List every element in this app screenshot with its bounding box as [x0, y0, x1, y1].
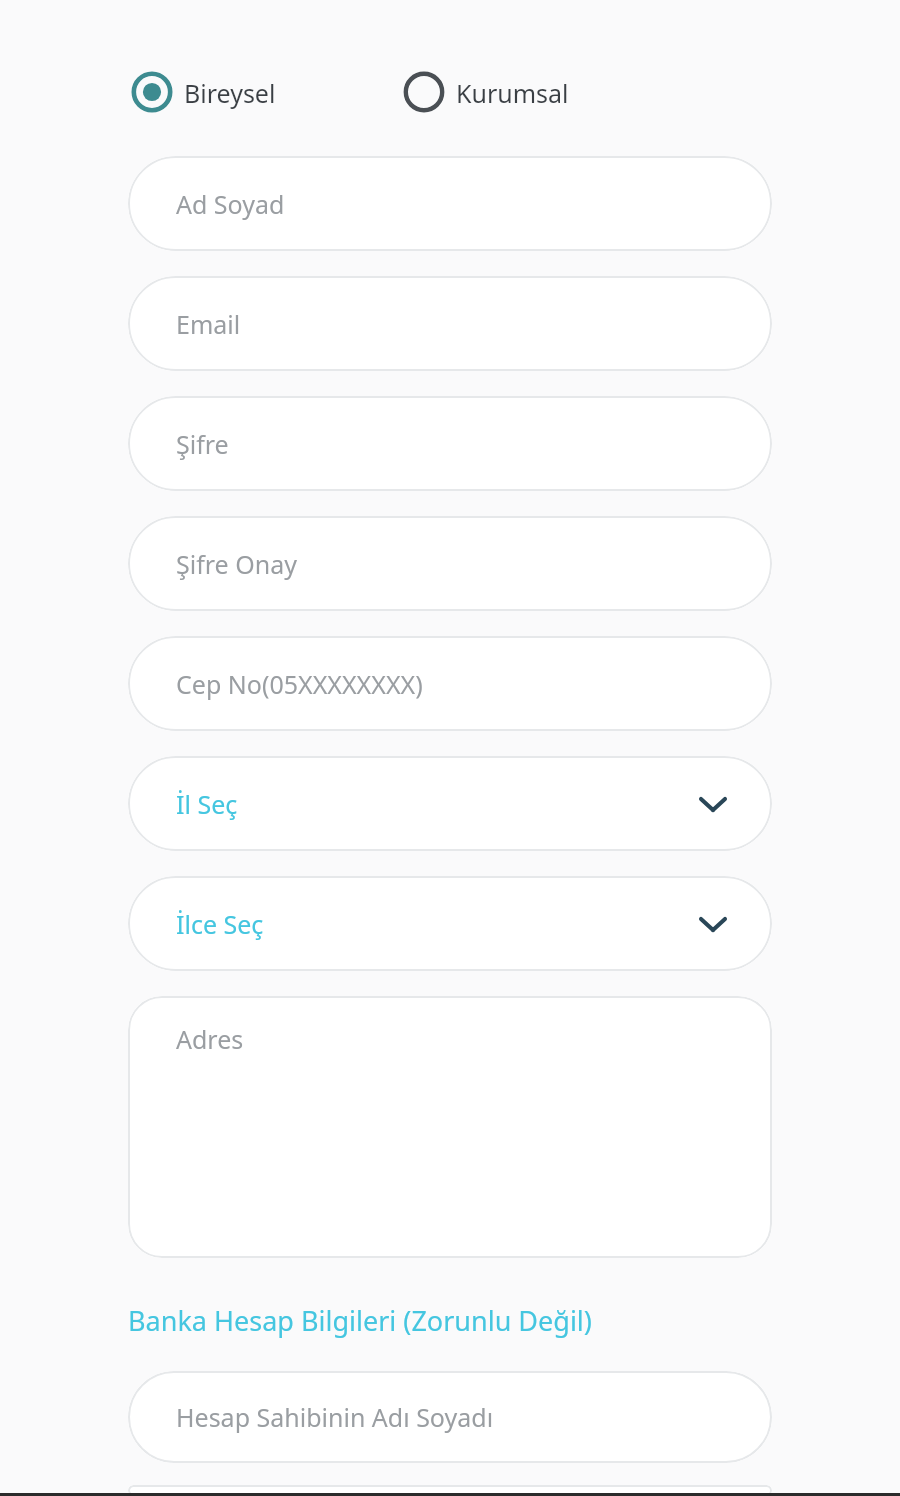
staticText: Ad Soyad [176, 187, 285, 221]
button[interactable]: Email [128, 276, 772, 371]
button[interactable]: Ad Soyad [128, 156, 772, 251]
button[interactable]: Şifre [128, 396, 772, 491]
staticText: İlce Seç [176, 907, 264, 941]
button[interactable]: Hesap Sahibinin Adı Soyadı [128, 1371, 772, 1463]
other: Aç [696, 907, 730, 941]
staticText: Banka Hesap Bilgileri (Zorunlu Değil) [128, 1302, 592, 1339]
staticText: Kurumsal [456, 76, 569, 110]
button[interactable]: Bireysel [128, 66, 278, 118]
staticText: Cep No(05XXXXXXXX) [176, 667, 423, 701]
button[interactable]: Kurumsal [400, 66, 571, 118]
button[interactable]: İl Seç [128, 756, 772, 851]
staticText: Email [176, 307, 241, 341]
staticText: Şifre Onay [176, 547, 297, 581]
staticText: Şifre [176, 427, 229, 461]
staticText: Bireysel [184, 76, 276, 110]
button[interactable] [128, 1485, 772, 1496]
button[interactable]: Adres [128, 996, 772, 1258]
other: Aç [696, 787, 730, 821]
button[interactable]: Cep No(05XXXXXXXX) [128, 636, 772, 731]
staticText: Adres [176, 1022, 244, 1056]
button[interactable]: Banka Hesap Bilgileri (Zorunlu Değil) [128, 1300, 592, 1341]
button[interactable]: İlce Seç [128, 876, 772, 971]
button[interactable]: Şifre Onay [128, 516, 772, 611]
staticText: İl Seç [176, 787, 238, 821]
staticText: Hesap Sahibinin Adı Soyadı [176, 1400, 494, 1434]
